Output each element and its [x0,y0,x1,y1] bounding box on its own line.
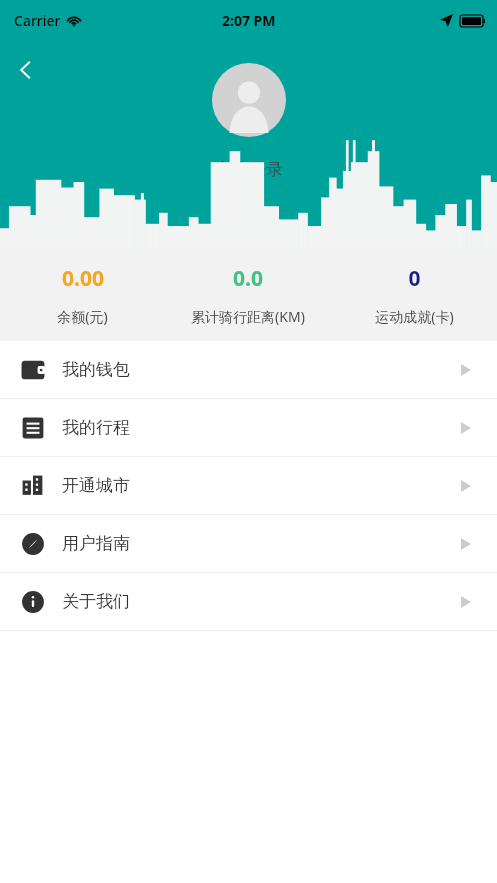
button[interactable]: 关于我们 [0,573,497,630]
button[interactable]: 点击登录 [205,157,293,182]
button[interactable]: 0 [331,264,497,326]
staticText: 我的钱包 [62,359,130,380]
staticText: 开通城市 [62,475,130,496]
button[interactable]: Profile avatar [212,63,286,137]
button[interactable]: 我的行程 [0,399,497,456]
staticText: 0 [408,264,421,293]
staticText: 关于我们 [62,591,130,612]
button[interactable]: 0.0 [165,264,331,326]
button[interactable]: 我的钱包 [0,341,497,398]
button[interactable]: 0.00 [0,264,165,326]
staticText: 点击登录 [215,159,283,180]
staticText: 0.00 [62,264,104,293]
staticText: 我的行程 [62,417,130,438]
button[interactable]: 开通城市 [0,457,497,514]
staticText: 0.0 [233,264,263,293]
staticText: Carrier [14,11,61,30]
button[interactable]: 用户指南 [0,515,497,572]
button[interactable]: Back [6,50,46,90]
staticText: 2:07 PM [222,11,276,30]
staticText: 用户指南 [62,533,130,554]
staticText: 余额(元) [57,307,108,326]
staticText: 运动成就(卡) [375,307,454,326]
staticText: 累计骑行距离(KM) [191,307,305,326]
